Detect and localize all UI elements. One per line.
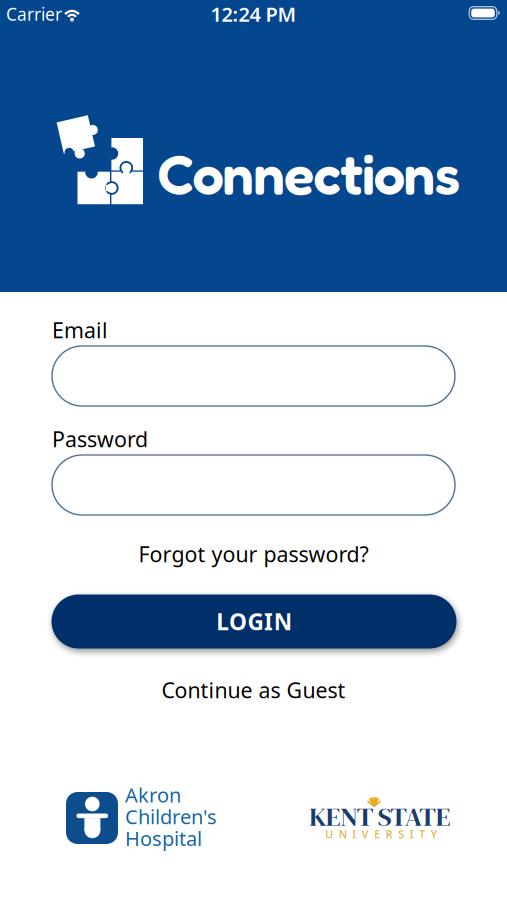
button[interactable]: Email — [52, 346, 455, 406]
staticText: I — [410, 827, 414, 841]
button[interactable]: LOGIN — [51, 594, 456, 648]
staticText: Email — [52, 316, 108, 344]
staticText: Connections — [157, 140, 460, 208]
staticText: Hospital — [125, 825, 202, 852]
button[interactable]: Forgot your password? — [138, 540, 368, 568]
staticText: I — [352, 827, 356, 841]
staticText: Children's — [125, 803, 217, 830]
button[interactable]: Continue as Guest — [161, 676, 345, 704]
staticText: R — [386, 827, 393, 841]
staticText: E — [374, 827, 380, 841]
staticText: Akron — [125, 781, 181, 808]
staticText: 12:24 PM — [210, 1, 296, 27]
staticText: U — [325, 827, 333, 841]
staticText: S — [398, 827, 404, 841]
staticText: N — [339, 827, 347, 841]
staticText: V — [362, 827, 369, 841]
staticText: KENT STATE — [309, 798, 451, 835]
staticText: Password — [52, 425, 148, 453]
staticText: T — [419, 827, 425, 841]
staticText: LOGIN — [216, 606, 292, 636]
staticText: Carrier — [6, 2, 62, 25]
staticText: Forgot your password? — [138, 540, 368, 568]
staticText: Continue as Guest — [161, 676, 345, 704]
button[interactable]: Password — [52, 455, 455, 515]
staticText: Y — [431, 827, 437, 841]
